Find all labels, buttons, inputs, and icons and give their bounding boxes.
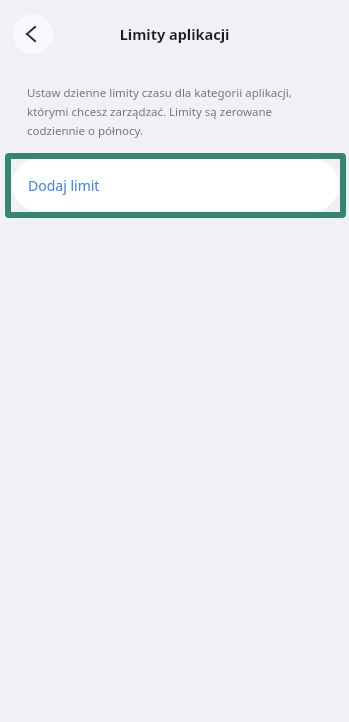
staticText: Limity aplikacji [0, 24, 349, 44]
staticText: Ustaw dzienne limity czasu dla kategorii… [27, 82, 301, 139]
button[interactable]: Back [13, 14, 53, 54]
button[interactable]: Dodaj limit [12, 159, 339, 211]
staticText: Dodaj limit [28, 176, 100, 195]
